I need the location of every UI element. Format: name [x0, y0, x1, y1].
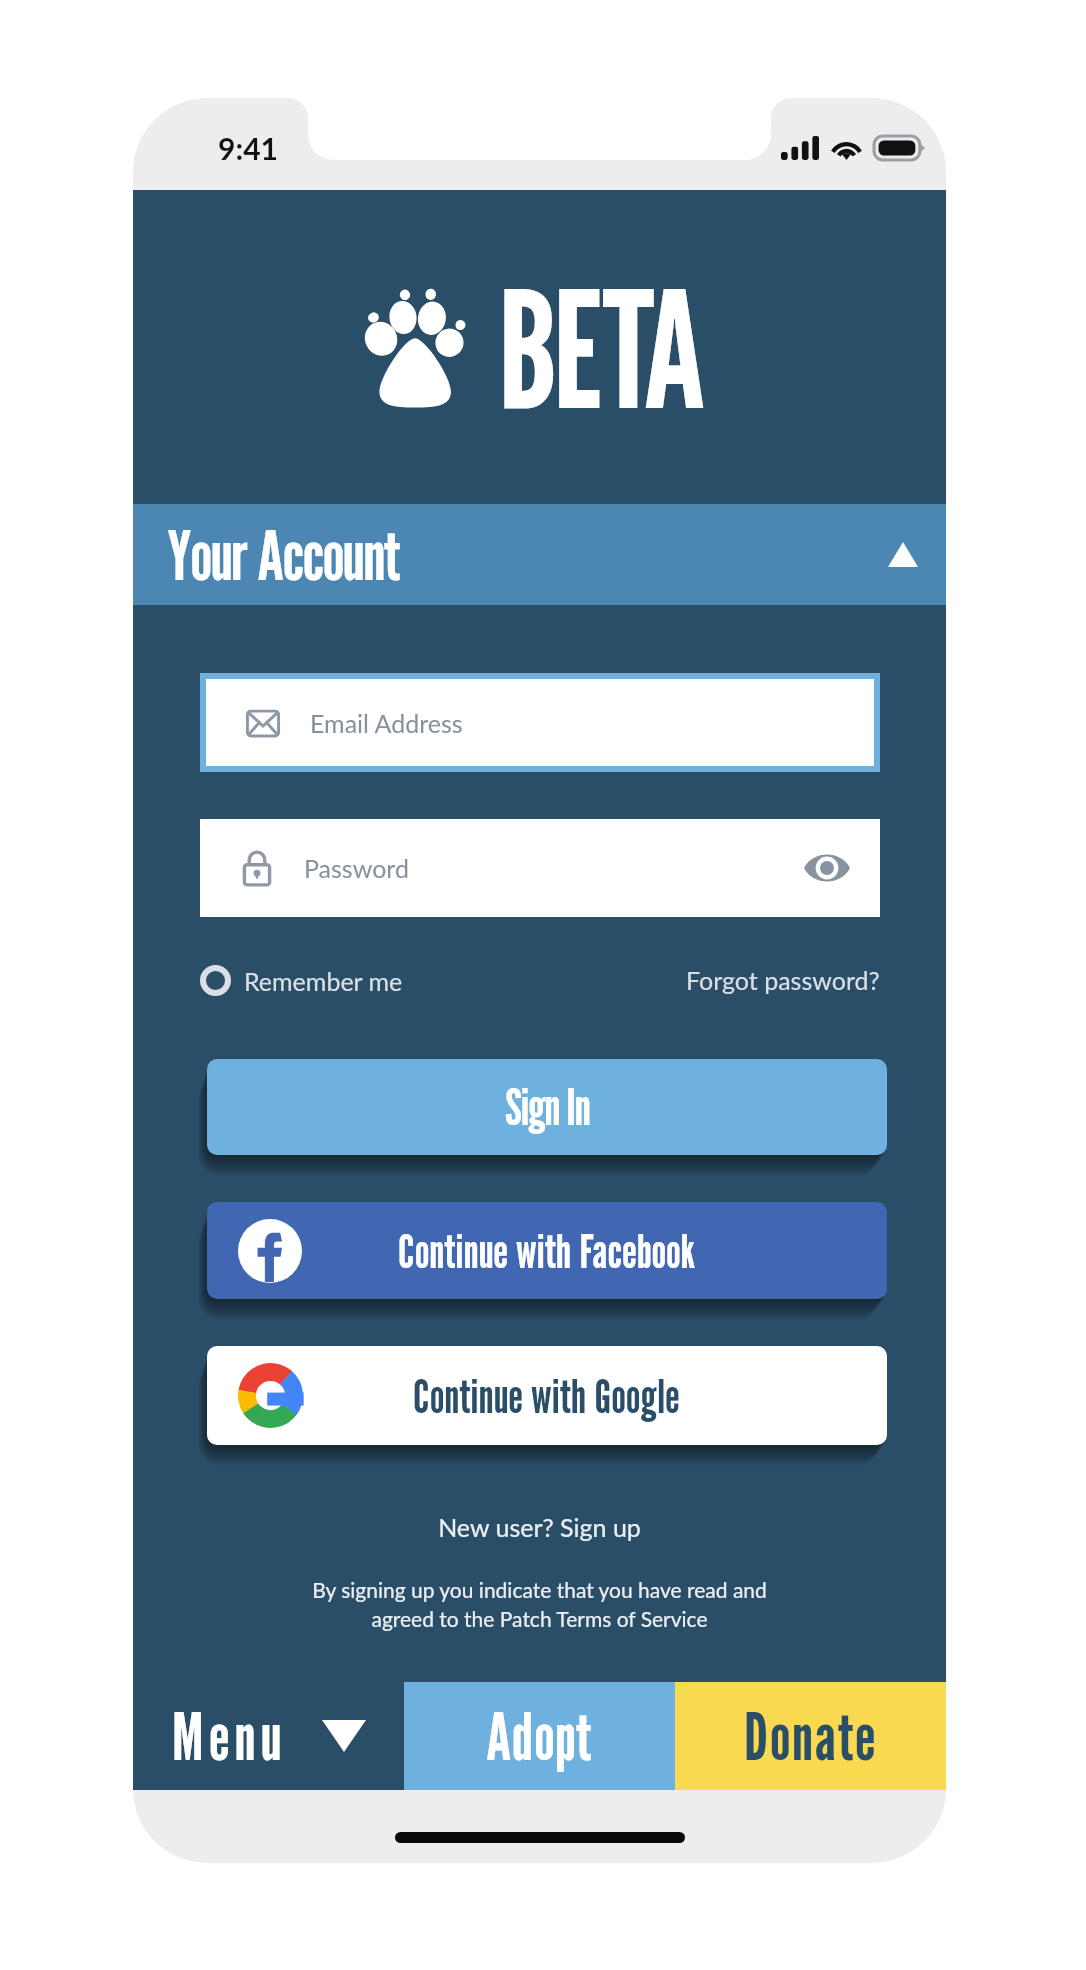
- button[interactable]: Your Account: [133, 504, 946, 605]
- other: Show password: [804, 851, 850, 885]
- button[interactable]: Password: [200, 819, 880, 917]
- staticText: Remember me: [244, 966, 403, 996]
- staticText: Password: [304, 853, 409, 883]
- button[interactable]: Sign In: [207, 1059, 887, 1155]
- staticText: Sign In: [505, 1077, 590, 1137]
- staticText: BETA: [498, 251, 702, 445]
- button[interactable]: Adopt: [404, 1682, 675, 1790]
- button[interactable]: Donate: [675, 1682, 946, 1790]
- button[interactable]: Continue with Facebook: [207, 1202, 887, 1299]
- staticText: Your Account: [167, 513, 400, 596]
- staticText: Continue with Google: [413, 1368, 681, 1423]
- staticText: Donate: [744, 1697, 878, 1775]
- staticText: 9:41: [218, 130, 278, 166]
- button[interactable]: New user? Sign up: [133, 1512, 946, 1542]
- staticText: Menu: [172, 1697, 288, 1775]
- button[interactable]: Email Address: [206, 679, 874, 766]
- button[interactable]: Continue with Google: [207, 1346, 887, 1445]
- button[interactable]: Menu: [133, 1682, 404, 1790]
- staticText: By signing up you indicate that you have…: [133, 1577, 946, 1631]
- button[interactable]: Remember me: [200, 965, 403, 996]
- button[interactable]: Forgot password?: [686, 965, 880, 995]
- staticText: Email Address: [310, 708, 463, 738]
- staticText: Adopt: [486, 1697, 593, 1775]
- staticText: Continue with Facebook: [398, 1223, 696, 1278]
